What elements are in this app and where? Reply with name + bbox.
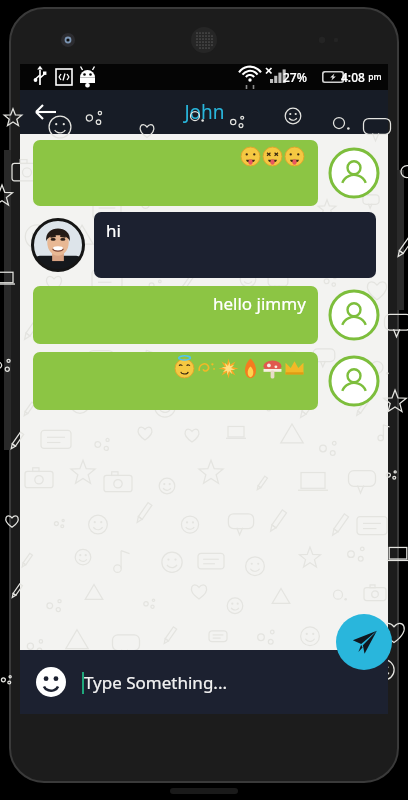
- button[interactable]: John's photo: [31, 218, 85, 272]
- button[interactable]: [33, 140, 318, 206]
- staticText: Type Something...: [84, 671, 228, 694]
- button[interactable]: Send message: [336, 614, 392, 670]
- button[interactable]: Emoji: [34, 665, 68, 699]
- staticText: hi: [106, 219, 121, 242]
- staticText: 27%: [283, 69, 307, 85]
- button[interactable]: hello jimmy: [33, 286, 318, 344]
- button[interactable]: Contact avatar: [328, 355, 380, 407]
- button[interactable]: Contact avatar: [328, 147, 380, 199]
- staticText: John: [184, 99, 225, 125]
- button[interactable]: Contact avatar: [328, 289, 380, 341]
- staticText: pm: [366, 71, 382, 83]
- button[interactable]: hi: [94, 212, 376, 278]
- button[interactable]: Type Something...: [82, 660, 318, 704]
- button[interactable]: Back: [26, 92, 66, 132]
- button[interactable]: [33, 352, 318, 410]
- staticText: 4:08: [341, 69, 365, 85]
- staticText: hello jimmy: [213, 292, 306, 315]
